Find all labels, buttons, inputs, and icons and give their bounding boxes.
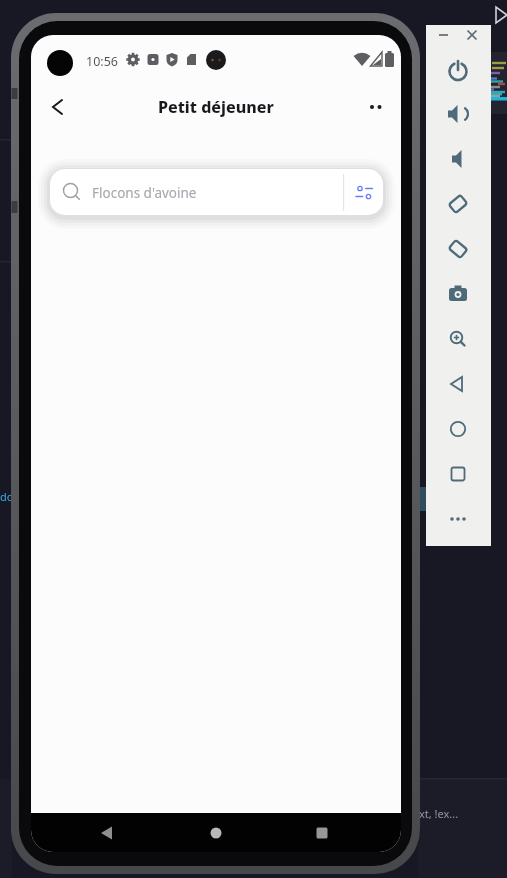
button[interactable]	[434, 27, 452, 43]
button[interactable]	[444, 460, 472, 488]
button[interactable]	[349, 176, 381, 208]
button[interactable]	[444, 56, 472, 84]
button[interactable]	[444, 325, 472, 353]
button[interactable]	[41, 91, 73, 123]
button[interactable]	[444, 370, 472, 398]
button[interactable]: Flocons d'avoine	[50, 169, 383, 215]
button[interactable]	[444, 100, 472, 128]
button[interactable]	[444, 505, 472, 533]
button[interactable]	[196, 818, 236, 848]
button[interactable]	[463, 27, 481, 43]
button[interactable]	[444, 190, 472, 218]
staticText: xt, !ex...	[419, 806, 459, 821]
staticText: 10:56	[86, 53, 118, 70]
button[interactable]	[444, 280, 472, 308]
staticText: do	[0, 489, 14, 504]
button[interactable]	[444, 145, 472, 173]
button[interactable]	[444, 415, 472, 443]
button[interactable]	[87, 818, 127, 848]
staticText: Petit déjeuner	[158, 96, 274, 118]
button[interactable]	[359, 91, 391, 123]
button[interactable]	[302, 818, 342, 848]
button[interactable]	[444, 235, 472, 263]
staticText: Flocons d'avoine	[92, 184, 197, 202]
